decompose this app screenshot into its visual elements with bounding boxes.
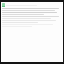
other: App logo [2, 3, 5, 7]
button[interactable]: App logo [2, 3, 62, 7]
